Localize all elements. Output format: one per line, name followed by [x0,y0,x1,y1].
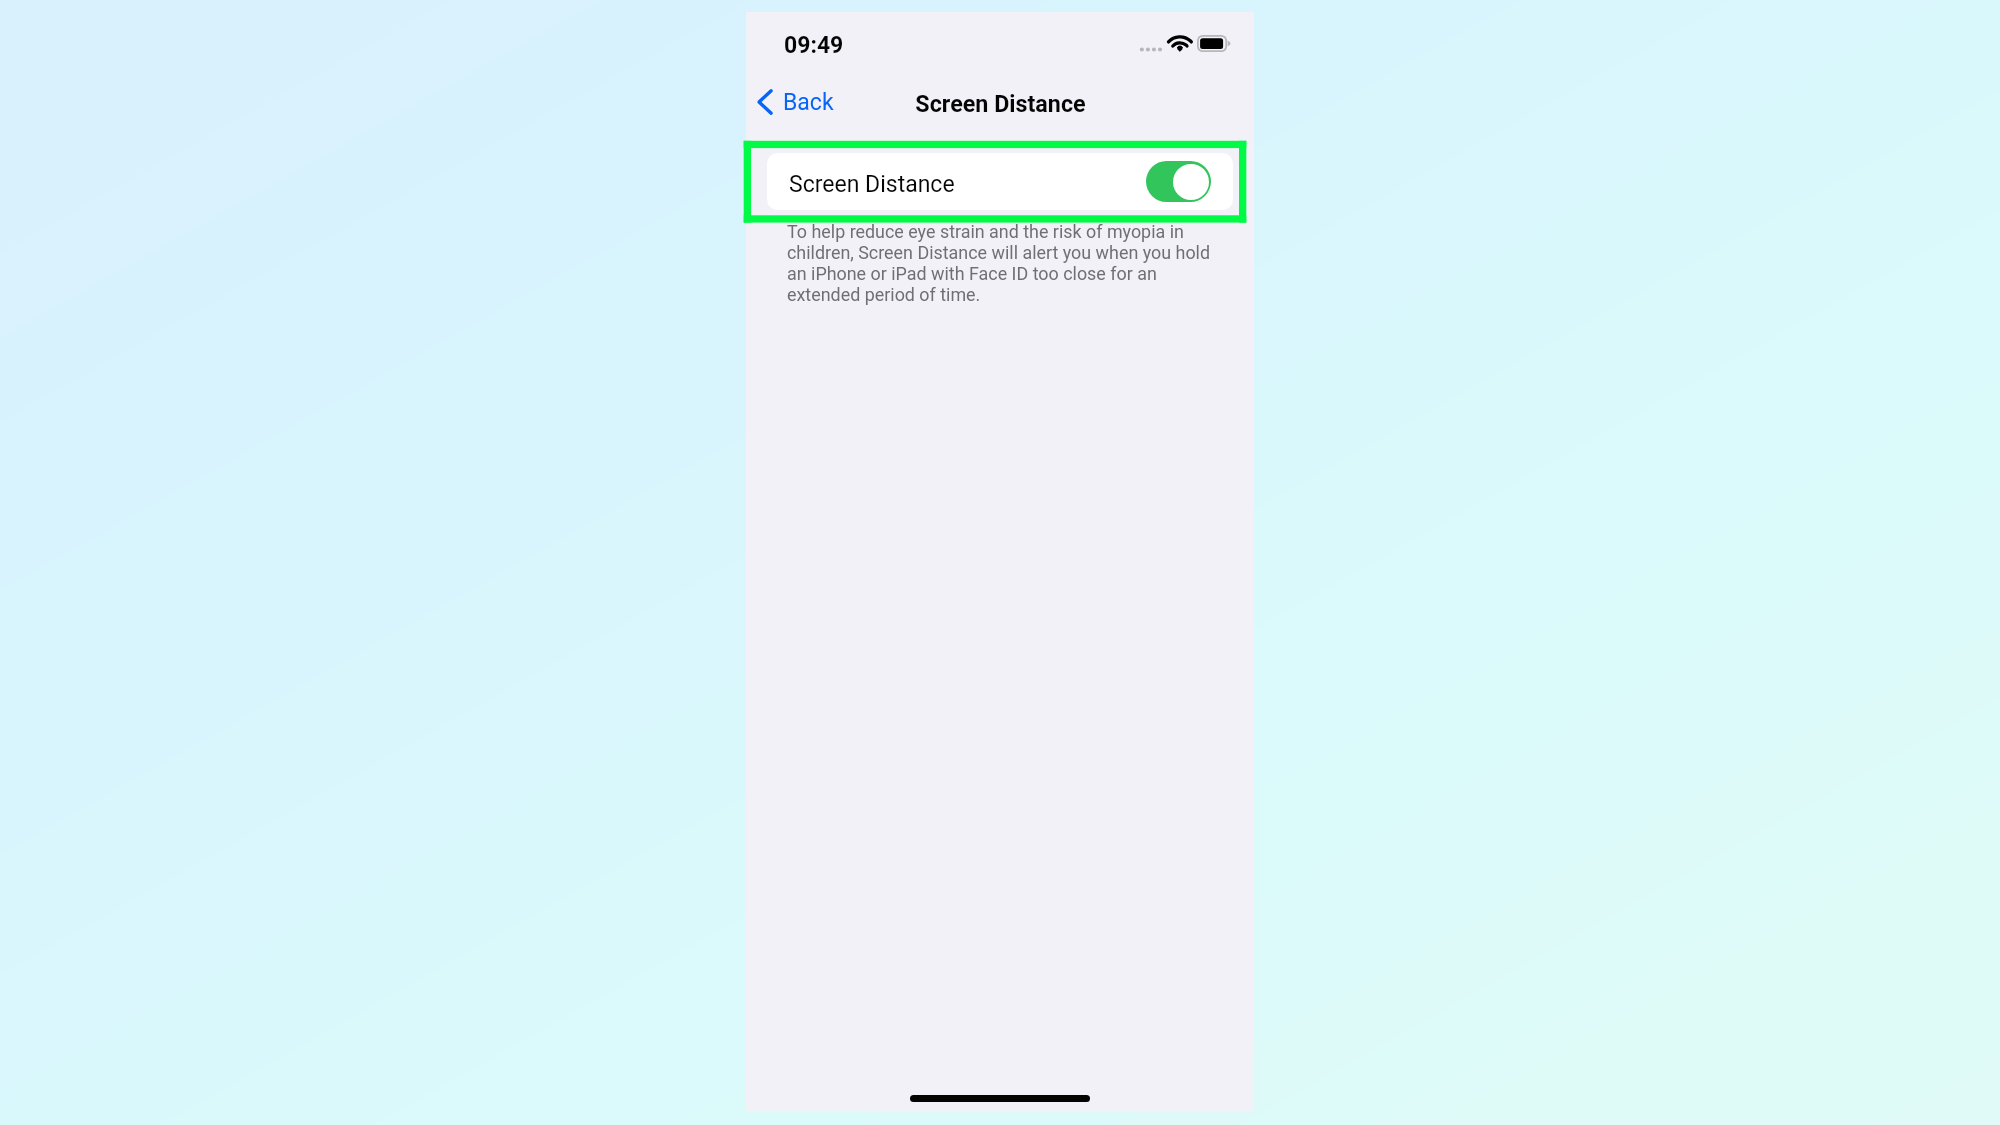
staticText: 09:49 [784,32,844,59]
staticText: To help reduce eye strain and the risk o… [787,222,1223,306]
button[interactable]: Back [754,80,834,124]
button[interactable]: Screen Distance [767,153,1233,210]
button[interactable]: Screen Distance toggle, on [1146,161,1211,202]
staticText: Screen Distance [915,90,1086,117]
staticText: Back [783,89,834,116]
staticText: Screen Distance [789,171,955,198]
